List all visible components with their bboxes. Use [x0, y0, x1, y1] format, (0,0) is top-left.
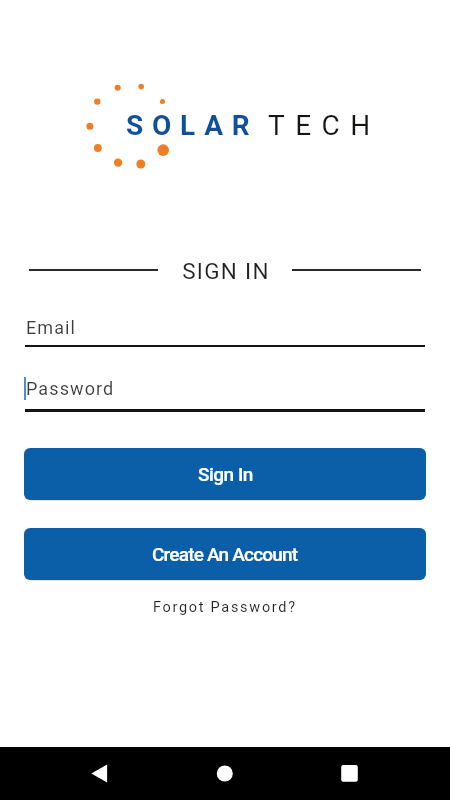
- button[interactable]: Forgot Password?: [153, 599, 297, 616]
- button[interactable]: [325, 747, 375, 800]
- staticText: Email: [26, 317, 77, 338]
- button[interactable]: Sign In: [24, 448, 426, 500]
- staticText: TECH: [268, 109, 381, 142]
- staticText: SOLAR: [126, 109, 259, 142]
- staticText: Create An Account: [152, 543, 298, 565]
- button[interactable]: [200, 747, 250, 800]
- button[interactable]: [75, 747, 125, 800]
- staticText: SIGN IN: [1, 258, 450, 284]
- staticText: Password: [26, 378, 115, 399]
- staticText: Sign In: [198, 463, 253, 485]
- button[interactable]: Create An Account: [24, 528, 426, 580]
